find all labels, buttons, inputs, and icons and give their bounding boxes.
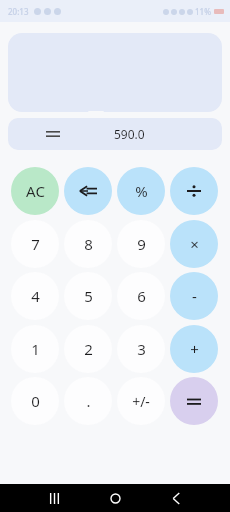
button[interactable]: AC	[11, 167, 59, 215]
button[interactable]: Back	[166, 488, 186, 508]
button[interactable]: Backspace	[64, 167, 112, 215]
other: Equals result	[46, 129, 60, 139]
button[interactable]: +/-	[117, 377, 165, 425]
button[interactable]: 7	[11, 220, 59, 268]
staticText: 3	[137, 339, 146, 359]
button[interactable]: 4	[11, 272, 59, 320]
staticText: %	[135, 181, 148, 201]
button[interactable]: %	[117, 167, 165, 215]
staticText: 6	[137, 286, 146, 306]
staticText: 9	[137, 234, 146, 254]
button[interactable]: +	[170, 325, 218, 373]
staticText: +/-	[132, 392, 150, 411]
button[interactable]: -	[170, 272, 218, 320]
button[interactable]: Equals	[170, 377, 218, 425]
button[interactable]: 0	[11, 377, 59, 425]
staticText: 8	[84, 234, 93, 254]
button[interactable]: 9	[117, 220, 165, 268]
button[interactable]: 1	[11, 325, 59, 373]
staticText: +	[190, 339, 199, 359]
button[interactable]: 2	[64, 325, 112, 373]
button[interactable]: Home	[105, 488, 125, 508]
button[interactable]: 5	[64, 272, 112, 320]
staticText: 2	[84, 339, 93, 359]
staticText: ×	[190, 234, 199, 254]
staticText: 11%	[195, 6, 211, 17]
button[interactable]: Equals result	[8, 118, 222, 150]
button[interactable]: 6	[117, 272, 165, 320]
staticText: 20:13	[8, 6, 29, 17]
button[interactable]: .	[64, 377, 112, 425]
staticText: 4	[31, 286, 40, 306]
staticText: -	[192, 286, 197, 306]
staticText: AC	[26, 181, 45, 201]
staticText: 590.0	[114, 126, 145, 142]
button[interactable]: ×	[170, 220, 218, 268]
button[interactable]: 8	[64, 220, 112, 268]
staticText: .	[86, 391, 91, 411]
staticText: 5	[84, 286, 93, 306]
staticText: 0	[31, 391, 40, 411]
staticText: 1	[31, 339, 40, 359]
button[interactable]: Recent apps	[44, 488, 64, 508]
staticText: 7	[31, 234, 40, 254]
button[interactable]: Divide	[170, 167, 218, 215]
button[interactable]: 3	[117, 325, 165, 373]
